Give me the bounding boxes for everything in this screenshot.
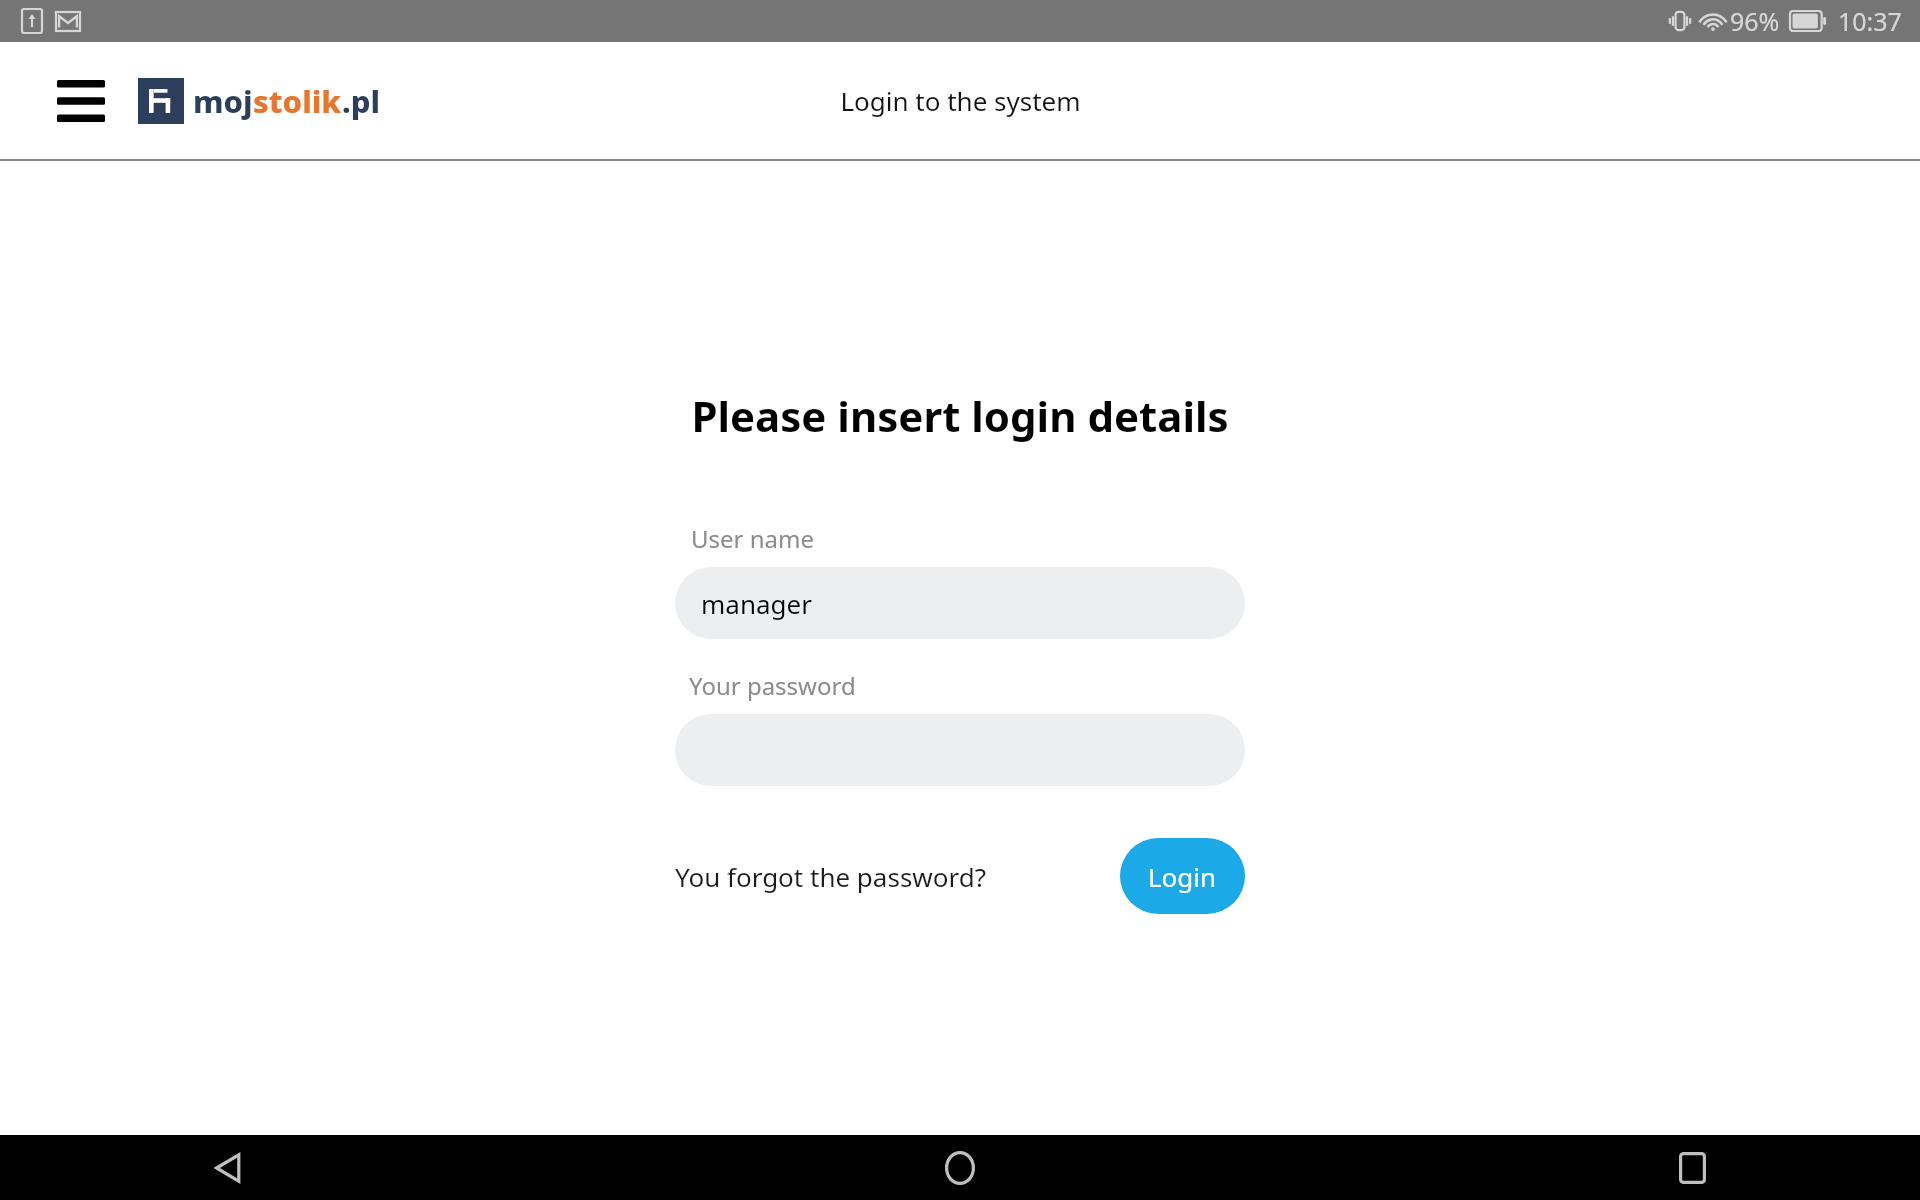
staticText: Login to the system <box>840 83 1081 118</box>
staticText: moj <box>193 80 253 122</box>
button[interactable]: Recent apps <box>1280 1135 1920 1200</box>
button[interactable]: manager <box>675 567 1245 639</box>
staticText: Login <box>1148 859 1217 894</box>
staticText: .pl <box>342 80 381 122</box>
staticText: Please insert login details <box>691 387 1229 444</box>
staticText: stolik <box>253 80 342 122</box>
button[interactable]: Login <box>1120 838 1245 914</box>
button[interactable]: Home <box>640 1135 1280 1200</box>
staticText: Your password <box>689 669 856 702</box>
button[interactable]: You forgot the password? <box>675 851 987 902</box>
staticText: 96% <box>1730 4 1780 38</box>
button[interactable]: moj <box>138 78 381 124</box>
button[interactable]: Back <box>0 1135 640 1200</box>
staticText: 10:37 <box>1838 4 1902 38</box>
staticText: User name <box>691 522 814 555</box>
button[interactable]: Open navigation menu <box>42 67 120 135</box>
staticText: manager <box>701 586 812 621</box>
staticText: You forgot the password? <box>675 859 987 894</box>
